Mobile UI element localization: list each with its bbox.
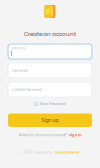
- button[interactable]: Username: [8, 44, 92, 59]
- staticText: PlanJetSoftware: [54, 150, 80, 155]
- staticText: Create an account: [24, 30, 76, 38]
- staticText: Sign in: [69, 132, 81, 138]
- staticText: Confirm Password: [12, 87, 42, 92]
- button[interactable]: Confirm Password: [8, 82, 92, 97]
- button[interactable]: Password: [8, 63, 92, 78]
- button[interactable]: Show Password: [34, 100, 65, 107]
- staticText: Sign up: [41, 117, 58, 124]
- staticText: © 2022 Powered by: [20, 150, 52, 155]
- staticText: Already have an account?: [19, 132, 67, 138]
- button[interactable]: Sign up: [8, 113, 92, 127]
- staticText: Password: [12, 68, 28, 73]
- staticText: Username: [11, 46, 26, 50]
- button[interactable]: Sign in: [69, 132, 81, 138]
- staticText: Show Password: [39, 102, 65, 106]
